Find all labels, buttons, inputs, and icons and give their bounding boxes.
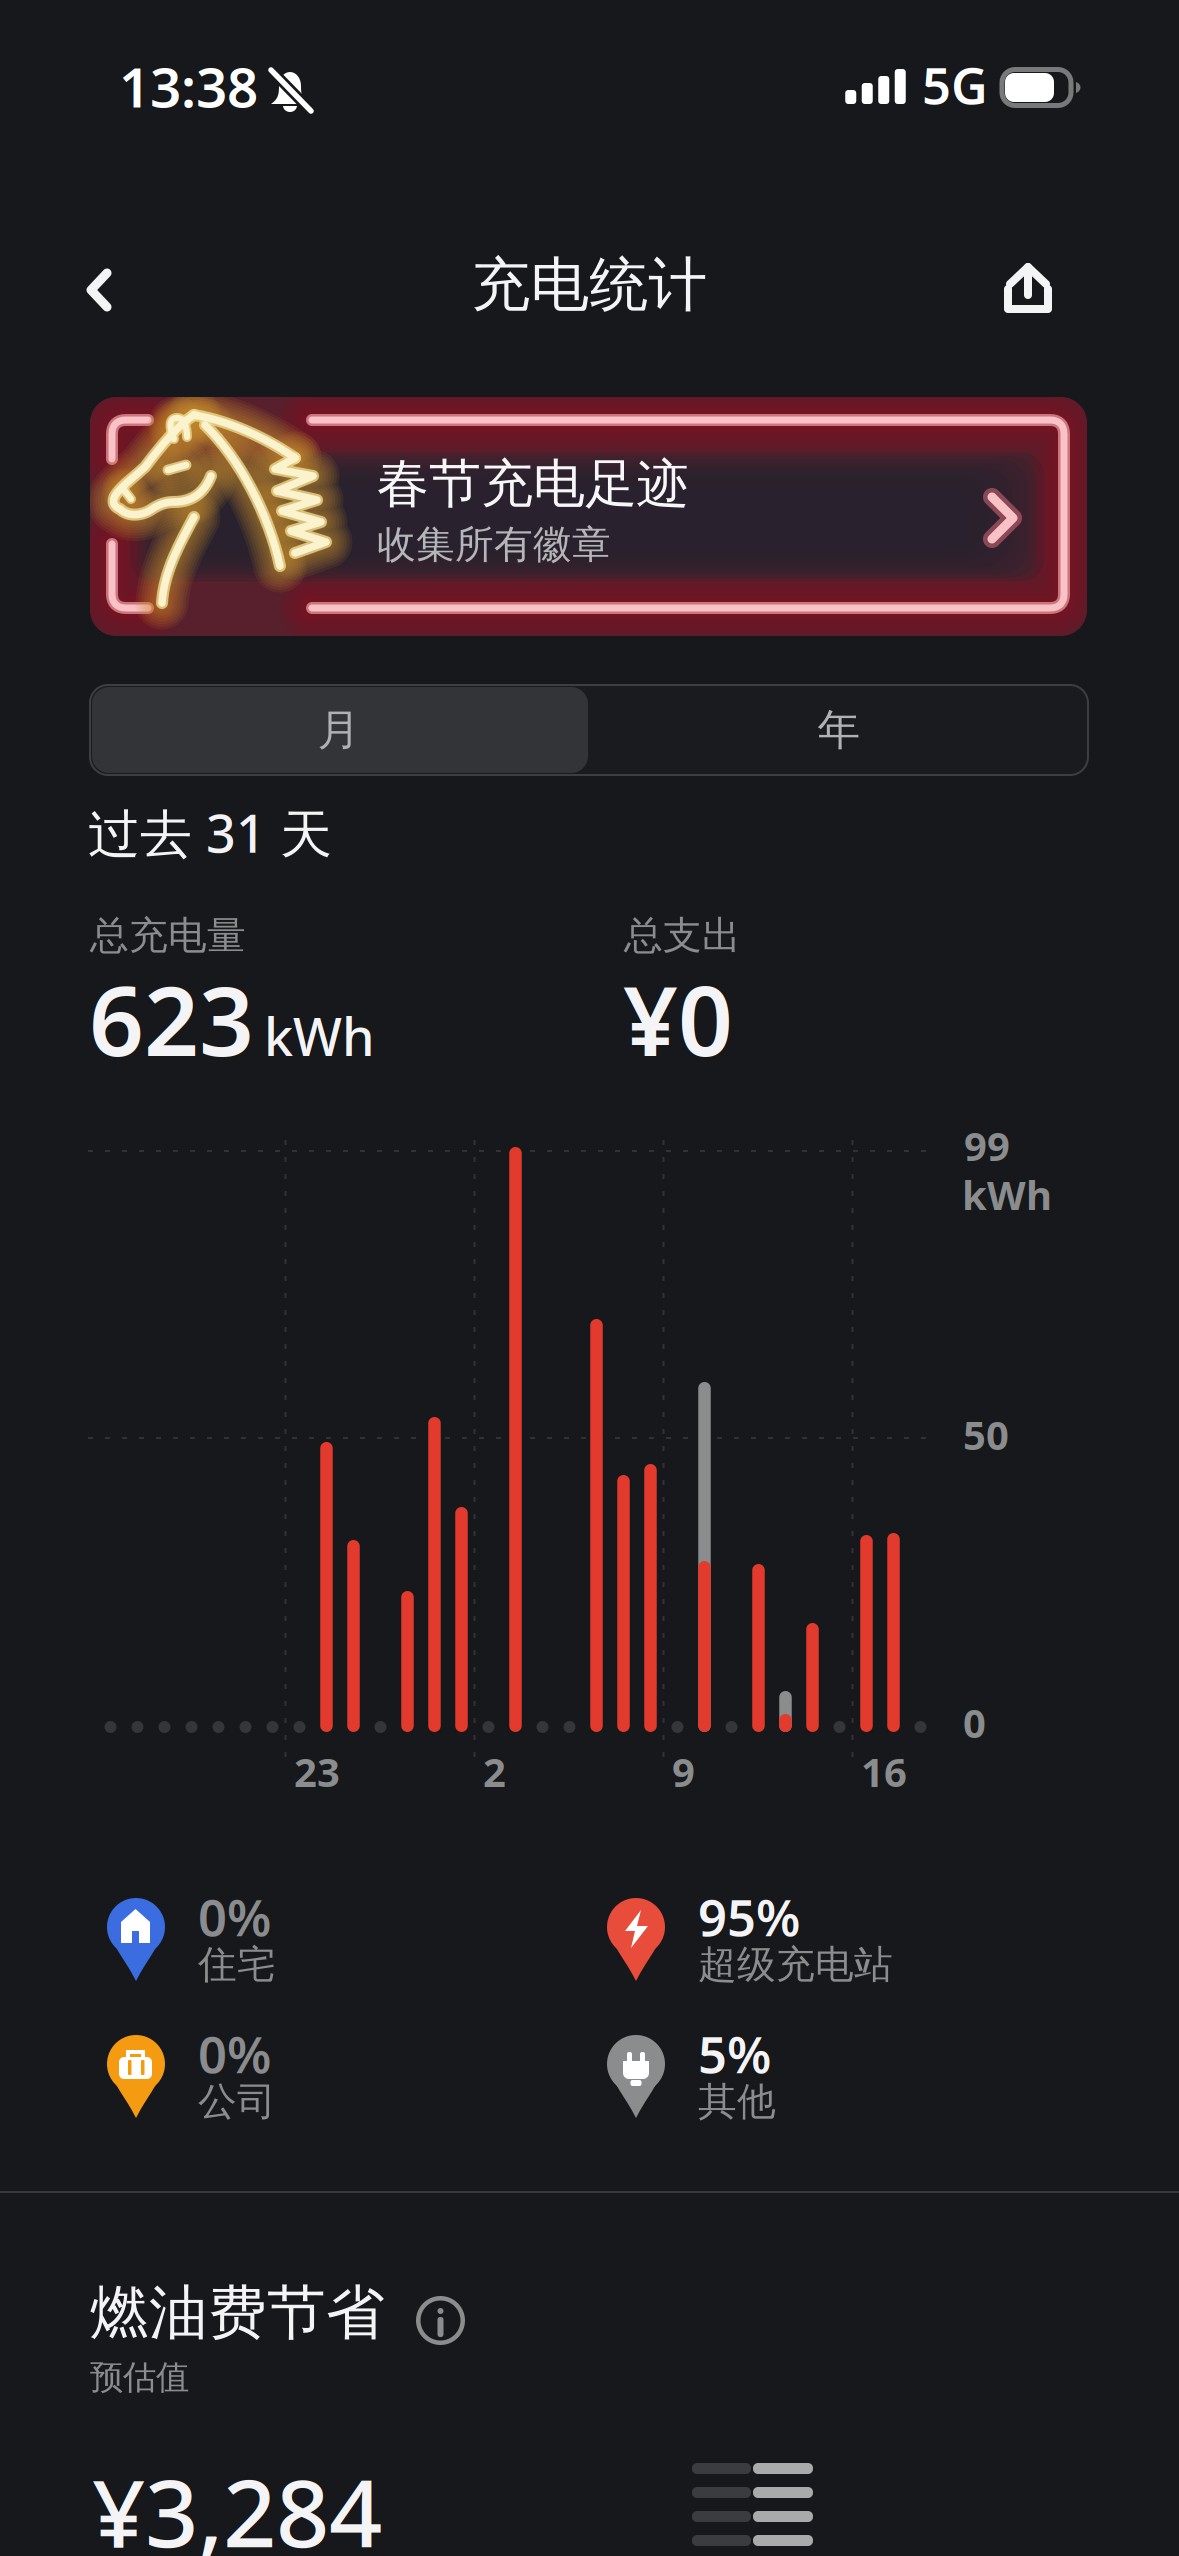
staticText: 0 bbox=[963, 1696, 986, 1749]
staticText: 99 bbox=[964, 1119, 1010, 1172]
staticText: 超级充电站 bbox=[698, 1941, 893, 1988]
staticText: 春节充电足迹 bbox=[377, 452, 689, 516]
staticText: 0% bbox=[198, 1883, 271, 1950]
staticText: 其他 bbox=[698, 2078, 776, 2125]
staticText: 充电统计 bbox=[471, 249, 707, 321]
staticText: 5G bbox=[922, 51, 988, 118]
button[interactable]: 春节充电足迹 bbox=[90, 397, 1087, 636]
button[interactable]: 月 bbox=[90, 685, 588, 775]
staticText: 2 bbox=[483, 1745, 506, 1798]
staticText: 收集所有徽章 bbox=[377, 521, 611, 568]
staticText: ¥0 bbox=[623, 955, 733, 1082]
staticText: 5% bbox=[698, 2020, 771, 2087]
staticText: 总支出 bbox=[624, 912, 741, 959]
staticText: 年 bbox=[817, 704, 860, 756]
staticText: 过去 31 天 bbox=[88, 798, 332, 867]
staticText: 月 bbox=[317, 704, 360, 756]
staticText: 总充电量 bbox=[90, 912, 246, 959]
button[interactable]: Back bbox=[64, 224, 134, 356]
staticText: ¥3,284 bbox=[92, 2449, 382, 2556]
staticText: 9 bbox=[672, 1745, 695, 1798]
button[interactable]: Info bbox=[396, 2276, 485, 2365]
staticText: 燃油费节省 bbox=[90, 2277, 385, 2349]
staticText: 623 bbox=[89, 955, 254, 1082]
staticText: 95% bbox=[698, 1883, 800, 1950]
staticText: 50 bbox=[963, 1408, 1009, 1461]
staticText: 预估值 bbox=[90, 2357, 189, 2398]
staticText: 0% bbox=[198, 2020, 271, 2087]
staticText: kWh bbox=[264, 1001, 375, 1070]
staticText: 公司 bbox=[198, 2078, 276, 2125]
staticText: 16 bbox=[861, 1745, 907, 1798]
button[interactable]: 年 bbox=[590, 685, 1088, 775]
button[interactable]: Share bbox=[979, 238, 1077, 338]
staticText: 13:38 bbox=[119, 50, 258, 123]
staticText: kWh bbox=[962, 1168, 1052, 1221]
staticText: 住宅 bbox=[198, 1941, 276, 1988]
staticText: 23 bbox=[294, 1745, 340, 1798]
